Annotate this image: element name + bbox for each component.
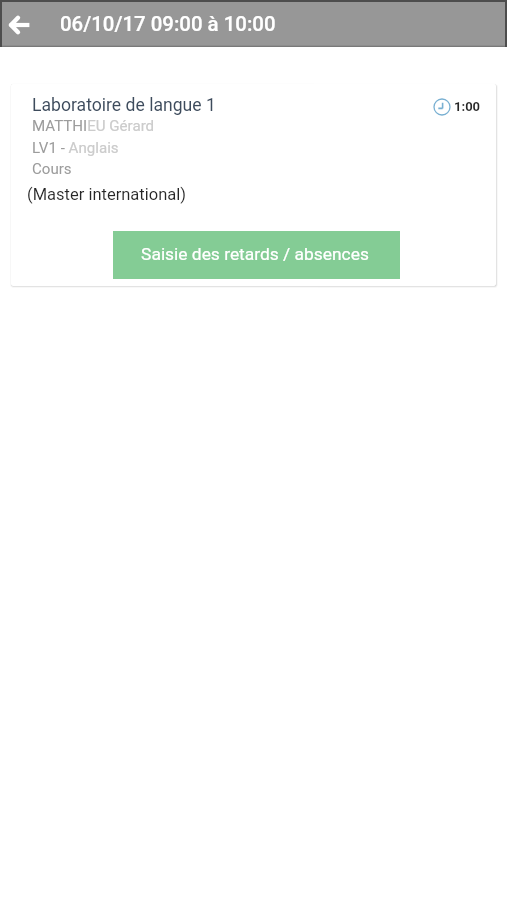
staticText: 1:00 — [454, 99, 481, 114]
button[interactable]: Back — [4, 10, 34, 40]
staticText: Laboratoire de langue 1 — [32, 95, 216, 116]
staticText: (Master international) — [27, 185, 186, 204]
staticText: MATTHIEU Gérard — [32, 117, 155, 135]
button[interactable]: Saisie des retards / absences — [113, 231, 400, 279]
button[interactable]: Laboratoire de langue 1 — [11, 84, 496, 286]
staticText: Cours — [32, 160, 72, 178]
staticText: LV1 - Anglais — [32, 139, 119, 157]
staticText: 06/10/17 09:00 à 10:00 — [60, 12, 276, 36]
staticText: Saisie des retards / absences — [141, 244, 369, 264]
